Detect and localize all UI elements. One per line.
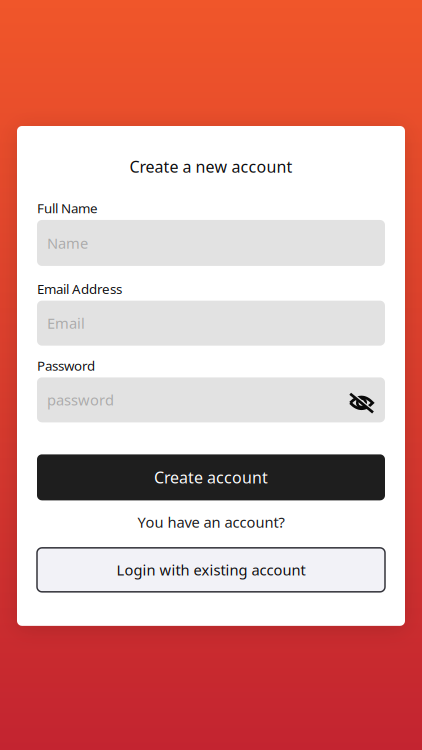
staticText: Email Address (37, 280, 122, 298)
staticText: Email (47, 313, 85, 333)
staticText: Password (37, 357, 95, 374)
button[interactable]: Email (37, 301, 385, 346)
staticText: password (47, 390, 114, 410)
staticText: Full Name (37, 199, 98, 217)
button[interactable]: Name (37, 220, 385, 266)
button[interactable]: password (37, 377, 385, 422)
button[interactable]: Login with existing account (37, 548, 385, 592)
staticText: You have an account? (137, 512, 284, 532)
staticText: Create a new account (129, 156, 292, 177)
staticText: Name (47, 233, 88, 253)
staticText: Login with existing account (116, 560, 305, 580)
button[interactable]: Create account (37, 454, 385, 500)
button[interactable]: Show password (341, 387, 374, 413)
staticText: Create account (154, 467, 268, 488)
